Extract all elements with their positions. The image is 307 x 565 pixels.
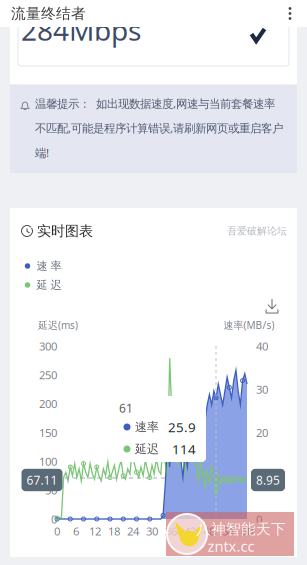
staticText: 0 <box>256 511 262 527</box>
staticText: 实时图表 <box>37 222 93 240</box>
staticText: 端! <box>35 145 49 160</box>
staticText: 30 <box>256 381 268 397</box>
button[interactable]: More options <box>276 0 304 27</box>
staticText: 300 <box>39 338 57 354</box>
staticText: 114 <box>172 440 196 458</box>
staticText: 18 <box>108 523 120 539</box>
staticText: 八神智能天下 <box>196 520 286 538</box>
button[interactable]: Download chart <box>258 292 286 320</box>
staticText: 36 <box>165 523 177 539</box>
staticText: zntx.cc <box>207 536 254 556</box>
staticText: 延迟(ms) <box>38 318 78 332</box>
staticText: 200 <box>39 396 57 411</box>
staticText: 60 <box>241 523 253 539</box>
staticText: 250 <box>39 367 57 382</box>
staticText: 0 <box>51 511 57 527</box>
staticText: 不匹配,可能是程序计算错误,请刷新网页或重启客户 <box>35 120 283 136</box>
staticText: 8.95 <box>256 472 280 488</box>
staticText: 100 <box>39 454 57 469</box>
staticText: 6 <box>73 523 79 539</box>
staticText: 速率 <box>135 419 159 434</box>
staticText: 61 <box>119 400 133 416</box>
staticText: 40 <box>256 338 268 354</box>
staticText: 30 <box>146 523 158 539</box>
staticText: 50 <box>45 482 57 498</box>
staticText: 24 <box>127 523 139 539</box>
staticText: 延 迟 <box>36 278 61 292</box>
staticText: 10 <box>256 468 268 483</box>
staticText: 速 率 <box>36 259 61 273</box>
staticText: 25.9 <box>168 418 196 436</box>
staticText: 速率(MB/s) <box>223 318 274 332</box>
staticText: 温馨提示： 如出现数据速度,网速与当前套餐速率 <box>35 96 275 111</box>
staticText: 0 <box>54 523 60 539</box>
staticText: 284Mbps <box>21 11 141 49</box>
staticText: 吾爱破解论坛 <box>227 225 287 237</box>
staticText: 150 <box>39 425 57 440</box>
staticText: 48 <box>203 523 215 539</box>
staticText: 20 <box>256 425 268 440</box>
staticText: 54 <box>222 523 234 539</box>
staticText: 延迟 <box>135 441 159 456</box>
staticText: 流量终结者 <box>11 4 86 23</box>
staticText: 67.11 <box>26 472 57 488</box>
staticText: 42 <box>184 523 196 539</box>
staticText: 12 <box>89 523 101 539</box>
